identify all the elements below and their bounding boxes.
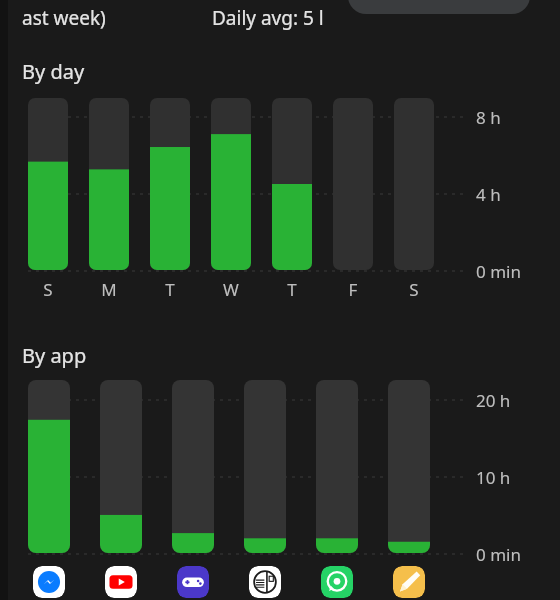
staticText: 8 h <box>476 106 501 129</box>
staticText: W <box>217 278 245 301</box>
button[interactable] <box>348 0 530 14</box>
staticText: Daily avg: 5 l <box>212 5 324 31</box>
staticText: By app <box>22 342 87 369</box>
button[interactable]: WhatsApp <box>321 566 353 598</box>
button[interactable]: News <box>249 566 281 598</box>
button[interactable]: YouTube <box>105 566 137 598</box>
staticText: By day <box>22 58 85 85</box>
staticText: S <box>34 278 62 301</box>
staticText: 0 min <box>476 543 521 566</box>
staticText: M <box>95 278 123 301</box>
staticText: T <box>156 278 184 301</box>
button[interactable]: Messenger <box>33 566 65 598</box>
staticText: 4 h <box>476 183 501 206</box>
staticText: 10 h <box>476 466 511 489</box>
staticText: T <box>278 278 306 301</box>
staticText: F <box>339 278 367 301</box>
staticText: ast week) <box>22 5 106 31</box>
button[interactable]: Game <box>177 566 209 598</box>
staticText: 0 min <box>476 260 521 283</box>
button[interactable]: Notes <box>393 566 425 598</box>
staticText: 20 h <box>476 389 511 412</box>
staticText: S <box>400 278 428 301</box>
